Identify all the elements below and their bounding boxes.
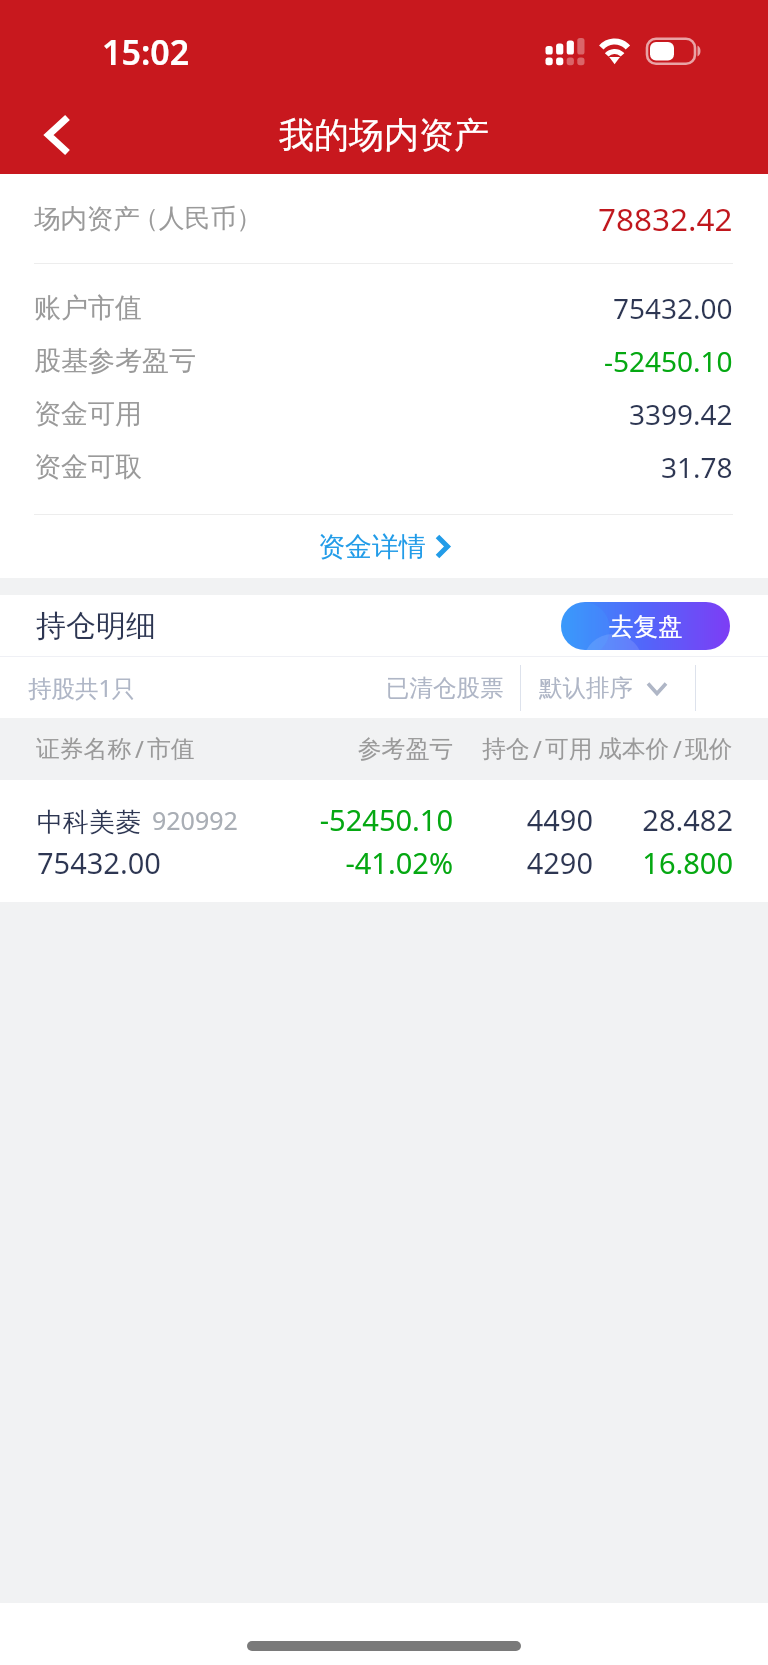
staticText: 成本价 bbox=[598, 734, 670, 764]
staticText: 股基参考盈亏 bbox=[34, 344, 196, 378]
staticText: （人民币） bbox=[133, 202, 262, 235]
staticText: 78832.42 bbox=[598, 197, 733, 240]
staticText: 920992 bbox=[152, 803, 238, 837]
staticText: 75432.00 bbox=[613, 289, 733, 327]
staticText: / bbox=[673, 733, 682, 765]
button[interactable]: 中科美菱 bbox=[0, 780, 768, 902]
staticText: 现价 bbox=[685, 734, 733, 764]
button[interactable]: 资金详情 bbox=[0, 515, 768, 578]
staticText: / bbox=[135, 733, 144, 765]
staticText: 15:02 bbox=[102, 29, 190, 75]
staticText: 4290 bbox=[453, 843, 593, 882]
staticText: 持仓明细 bbox=[36, 607, 156, 645]
staticText: 4490 bbox=[453, 800, 593, 839]
staticText: 资金可取 bbox=[34, 450, 142, 484]
staticText: -41.02% bbox=[313, 843, 453, 882]
staticText: 28.482 bbox=[593, 800, 733, 839]
staticText: 可用 bbox=[545, 734, 593, 764]
staticText: 场内资产 bbox=[34, 202, 140, 235]
staticText: 31.78 bbox=[661, 448, 733, 486]
staticText: 默认排序 bbox=[539, 673, 633, 703]
staticText: 我的场内资产 bbox=[0, 113, 768, 157]
staticText: 16.800 bbox=[593, 843, 733, 882]
staticText: 中科美菱 bbox=[37, 806, 141, 839]
staticText: -52450.10 bbox=[604, 342, 733, 380]
staticText: 证券名称 bbox=[36, 734, 132, 764]
button[interactable]: Back bbox=[24, 101, 92, 169]
staticText: -52450.10 bbox=[313, 800, 453, 839]
staticText: 参考盈亏 bbox=[313, 734, 453, 764]
button[interactable]: 默认排序 bbox=[539, 673, 668, 703]
staticText: 资金可用 bbox=[34, 397, 142, 431]
staticText: 3399.42 bbox=[629, 395, 733, 433]
staticText: 去复盘 bbox=[609, 611, 683, 642]
staticText: 账户市值 bbox=[34, 291, 142, 325]
staticText: 75432.00 bbox=[37, 843, 161, 882]
staticText: 持股共1只 bbox=[28, 672, 136, 704]
staticText: 资金详情 bbox=[318, 530, 426, 564]
staticText: 持仓 bbox=[482, 734, 530, 764]
staticText: 市值 bbox=[147, 734, 195, 764]
button[interactable]: 已清仓股票 bbox=[386, 673, 504, 703]
button[interactable]: 去复盘 bbox=[561, 602, 730, 650]
staticText: / bbox=[533, 733, 542, 765]
